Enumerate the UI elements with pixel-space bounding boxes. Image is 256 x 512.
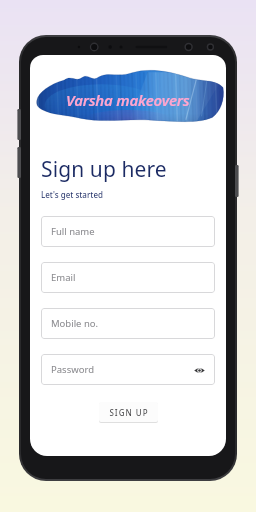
staticText: Mobile no.: [51, 317, 99, 330]
staticText: Email: [51, 271, 76, 284]
staticText: Sign up here: [41, 155, 167, 184]
staticText: Varsha makeovers: [66, 90, 190, 110]
staticText: Full name: [51, 225, 95, 238]
staticText: Password: [51, 363, 94, 376]
button[interactable]: SIGN UP: [99, 402, 158, 422]
staticText: Let's get started: [41, 189, 103, 200]
button[interactable]: Show password: [192, 363, 206, 377]
button[interactable]: Mobile no.: [41, 308, 215, 339]
button[interactable]: Email: [41, 262, 215, 293]
button[interactable]: Password: [41, 354, 215, 385]
staticText: SIGN UP: [109, 407, 149, 418]
button[interactable]: Full name: [41, 216, 215, 247]
